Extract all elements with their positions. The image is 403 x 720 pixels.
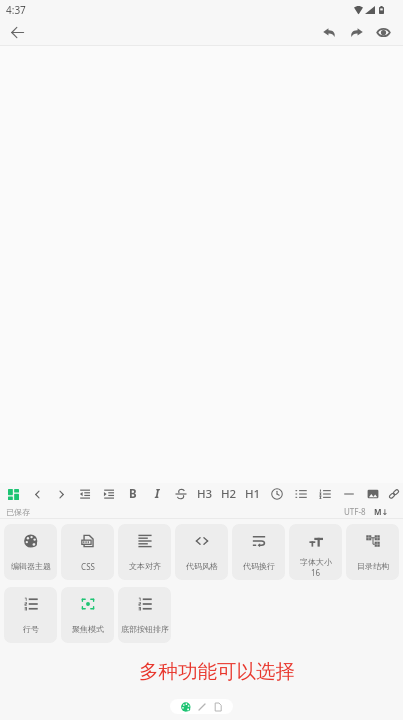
staticText: 多种功能可以选择: [139, 659, 295, 684]
button[interactable]: Undo: [316, 20, 343, 45]
button[interactable]: Redo: [343, 20, 370, 45]
button[interactable]: Grid: [1, 483, 25, 505]
staticText: I: [155, 486, 160, 502]
button[interactable]: 文本对齐: [118, 524, 171, 580]
button[interactable]: Indent: [97, 483, 121, 505]
button[interactable]: 行号: [4, 587, 57, 643]
button[interactable]: Theme: [178, 699, 194, 714]
button[interactable]: 代码风格: [175, 524, 228, 580]
staticText: 聚焦模式: [72, 624, 104, 634]
button[interactable]: Preview: [370, 20, 397, 45]
button[interactable]: Strikethrough: [169, 483, 193, 505]
button[interactable]: Image: [361, 483, 385, 505]
staticText: 已保存: [6, 507, 30, 517]
button[interactable]: Back: [5, 20, 30, 45]
staticText: 编辑器主题: [11, 561, 51, 571]
button[interactable]: Document: [210, 699, 226, 714]
button[interactable]: Previous: [25, 483, 49, 505]
button[interactable]: Edit: [194, 699, 210, 714]
button[interactable]: 编辑器主题: [4, 524, 57, 580]
staticText: H1: [245, 486, 261, 502]
button[interactable]: Insert time: [265, 483, 289, 505]
button[interactable]: H2: [217, 483, 241, 505]
staticText: H3: [197, 486, 213, 502]
staticText: H2: [221, 486, 237, 502]
button[interactable]: Link: [385, 483, 403, 505]
button[interactable]: Divider: [337, 483, 361, 505]
staticText: 目录结构: [357, 561, 389, 571]
staticText: 文本对齐: [129, 561, 161, 571]
button[interactable]: Numbered list: [313, 483, 337, 505]
staticText: 底部按钮排序: [121, 624, 169, 634]
staticText: 行号: [23, 624, 39, 634]
button[interactable]: 字体大小: [289, 524, 342, 580]
button[interactable]: 代码换行: [232, 524, 285, 580]
staticText: M↓: [374, 506, 389, 517]
button[interactable]: H3: [193, 483, 217, 505]
button[interactable]: CSS: [61, 524, 114, 580]
staticText: 字体大小: [300, 557, 332, 567]
button[interactable]: 聚焦模式: [61, 587, 114, 643]
staticText: 4:37: [6, 3, 26, 17]
button[interactable]: I: [145, 483, 169, 505]
button[interactable]: 底部按钮排序: [118, 587, 171, 643]
staticText: UTF-8: [344, 506, 366, 517]
button[interactable]: H1: [241, 483, 265, 505]
staticText: 代码风格: [186, 561, 218, 571]
staticText: 代码换行: [243, 561, 275, 571]
staticText: 16: [311, 567, 321, 578]
button[interactable]: Outdent: [73, 483, 97, 505]
button[interactable]: Next: [49, 483, 73, 505]
staticText: CSS: [81, 561, 95, 572]
button[interactable]: B: [121, 483, 145, 505]
staticText: B: [129, 486, 137, 502]
button[interactable]: Bullet list: [289, 483, 313, 505]
button[interactable]: 目录结构: [346, 524, 399, 580]
